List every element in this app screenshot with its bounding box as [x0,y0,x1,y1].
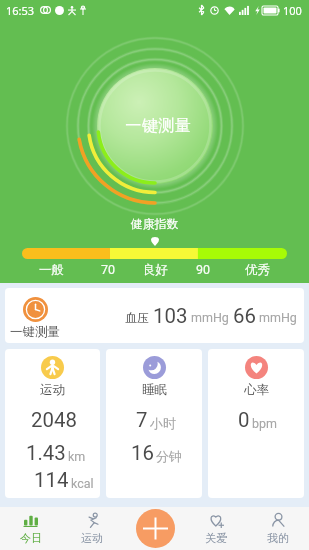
staticText: 一般 [39,262,64,276]
staticText: 优秀 [245,262,270,276]
staticText: 114 [34,468,69,492]
staticText: 16:53 [6,3,35,18]
staticText: 一键测量 [10,324,60,340]
staticText: 90 [196,262,211,276]
staticText: 健康指数 [131,217,179,232]
staticText: 运动 [40,382,65,398]
button[interactable]: 心率 [208,349,304,498]
staticText: 运动 [81,531,103,545]
staticText: mmHg [191,310,229,325]
staticText: bpm [252,416,277,431]
staticText: 16 [131,441,154,465]
staticText: 1.43 [26,441,66,465]
staticText: 0 [238,408,250,432]
staticText: 血压 [125,310,149,325]
staticText: 心率 [244,382,269,398]
button[interactable]: 运动 [61,507,123,550]
staticText: 66 [233,304,256,328]
staticText: 今日 [20,531,42,545]
staticText: 100 [283,3,302,18]
button[interactable]: 关爱 [185,507,247,550]
button[interactable]: 睡眠 [106,349,202,498]
staticText: 关爱 [205,531,227,545]
staticText: 分钟 [156,448,182,464]
staticText: 睡眠 [142,382,167,398]
button[interactable]: 一键测量 [5,288,304,343]
staticText: 7 [136,408,148,432]
button[interactable]: 运动 [5,349,100,498]
staticText: 103 [153,304,188,328]
button[interactable]: 一键测量 [125,116,191,136]
staticText: 2048 [31,408,77,432]
staticText: 良好 [143,262,168,276]
staticText: km [68,449,86,464]
button[interactable]: 我的 [247,507,309,550]
staticText: 我的 [267,531,289,545]
button[interactable]: 今日 [0,507,61,550]
staticText: mmHg [259,310,297,325]
staticText: 70 [101,262,116,276]
staticText: kcal [71,476,94,491]
button[interactable]: Add [136,509,175,548]
staticText: 小时 [150,415,176,431]
